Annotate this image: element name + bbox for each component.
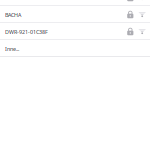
button[interactable]: UPC1234567 <box>0 0 150 6</box>
staticText: Inne... <box>5 45 19 53</box>
button[interactable]: Inne... <box>0 40 150 57</box>
staticText: BACHA <box>5 11 21 19</box>
staticText: DWR-921-01C38F <box>5 28 48 36</box>
button[interactable]: BACHA <box>0 6 150 23</box>
button[interactable]: DWR-921-01C38F <box>0 23 150 40</box>
